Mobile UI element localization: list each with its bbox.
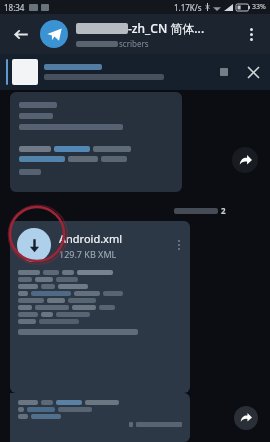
staticText: 2: [221, 205, 226, 216]
staticText: 18:34: [4, 2, 25, 13]
button[interactable]: Download file: [17, 228, 51, 262]
staticText: 33%: [252, 2, 266, 12]
button[interactable]: Back: [6, 19, 36, 49]
button[interactable]: [10, 393, 190, 442]
button[interactable]: Pinned list: [0, 54, 270, 90]
button[interactable]: [10, 92, 182, 192]
staticText: scribers: [119, 38, 149, 49]
button[interactable]: -zh_CN 简体...: [76, 20, 238, 49]
button[interactable]: Forward message: [232, 147, 258, 173]
button[interactable]: Forward message: [234, 406, 258, 430]
staticText: Android.xml: [59, 231, 123, 246]
button[interactable]: File options: [172, 238, 186, 252]
button[interactable]: Close pinned message: [240, 59, 266, 85]
staticText: 129.7 KB XML: [59, 248, 117, 260]
button[interactable]: More options: [238, 21, 264, 47]
other: Pinned list: [218, 66, 230, 78]
staticText: 1.17K/s: [174, 2, 202, 13]
button[interactable]: Download file: [10, 221, 190, 393]
staticText: -zh_CN 简体...: [128, 20, 205, 36]
